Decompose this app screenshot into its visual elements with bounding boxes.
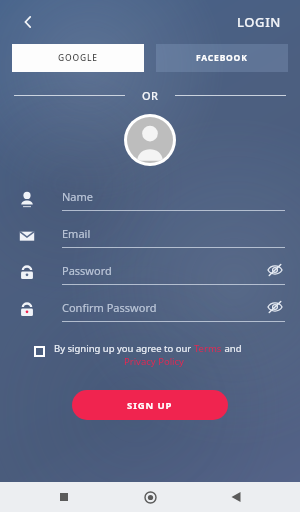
staticText: Terms xyxy=(194,342,222,355)
button[interactable]: Password xyxy=(0,254,300,291)
button[interactable]: Name xyxy=(0,180,300,217)
staticText: Password xyxy=(62,263,112,278)
staticText: GOOGLE xyxy=(58,52,98,64)
staticText: By signing up you agree to our xyxy=(54,342,194,355)
button[interactable]: SIGN UP xyxy=(72,390,228,420)
staticText: OR xyxy=(142,88,159,102)
staticText: LOGIN xyxy=(237,13,282,31)
button[interactable]: Terms xyxy=(194,342,222,355)
button[interactable]: GOOGLE xyxy=(12,44,144,72)
button[interactable]: Home xyxy=(138,485,162,509)
button[interactable]: Back xyxy=(14,8,42,36)
staticText: and xyxy=(222,342,242,355)
staticText: Email xyxy=(62,226,91,241)
button[interactable]: Email xyxy=(0,217,300,254)
button[interactable]: Profile photo xyxy=(124,114,176,166)
button[interactable]: Privacy Policy xyxy=(40,355,268,368)
staticText: FACEBOOK xyxy=(196,52,248,64)
staticText: Name xyxy=(62,189,94,204)
button[interactable]: Toggle password visibility xyxy=(265,260,285,280)
button[interactable]: Toggle password visibility xyxy=(265,297,285,317)
button[interactable]: FACEBOOK xyxy=(156,44,288,72)
staticText: Confirm Password xyxy=(62,300,157,315)
staticText: SIGN UP xyxy=(127,399,173,412)
button[interactable]: Agree to terms xyxy=(30,342,48,360)
staticText: Privacy Policy xyxy=(124,355,184,368)
button[interactable]: Back xyxy=(224,485,248,509)
button[interactable]: Recents xyxy=(52,485,76,509)
button[interactable]: LOGIN xyxy=(233,9,286,35)
button[interactable]: Confirm Password xyxy=(0,291,300,328)
